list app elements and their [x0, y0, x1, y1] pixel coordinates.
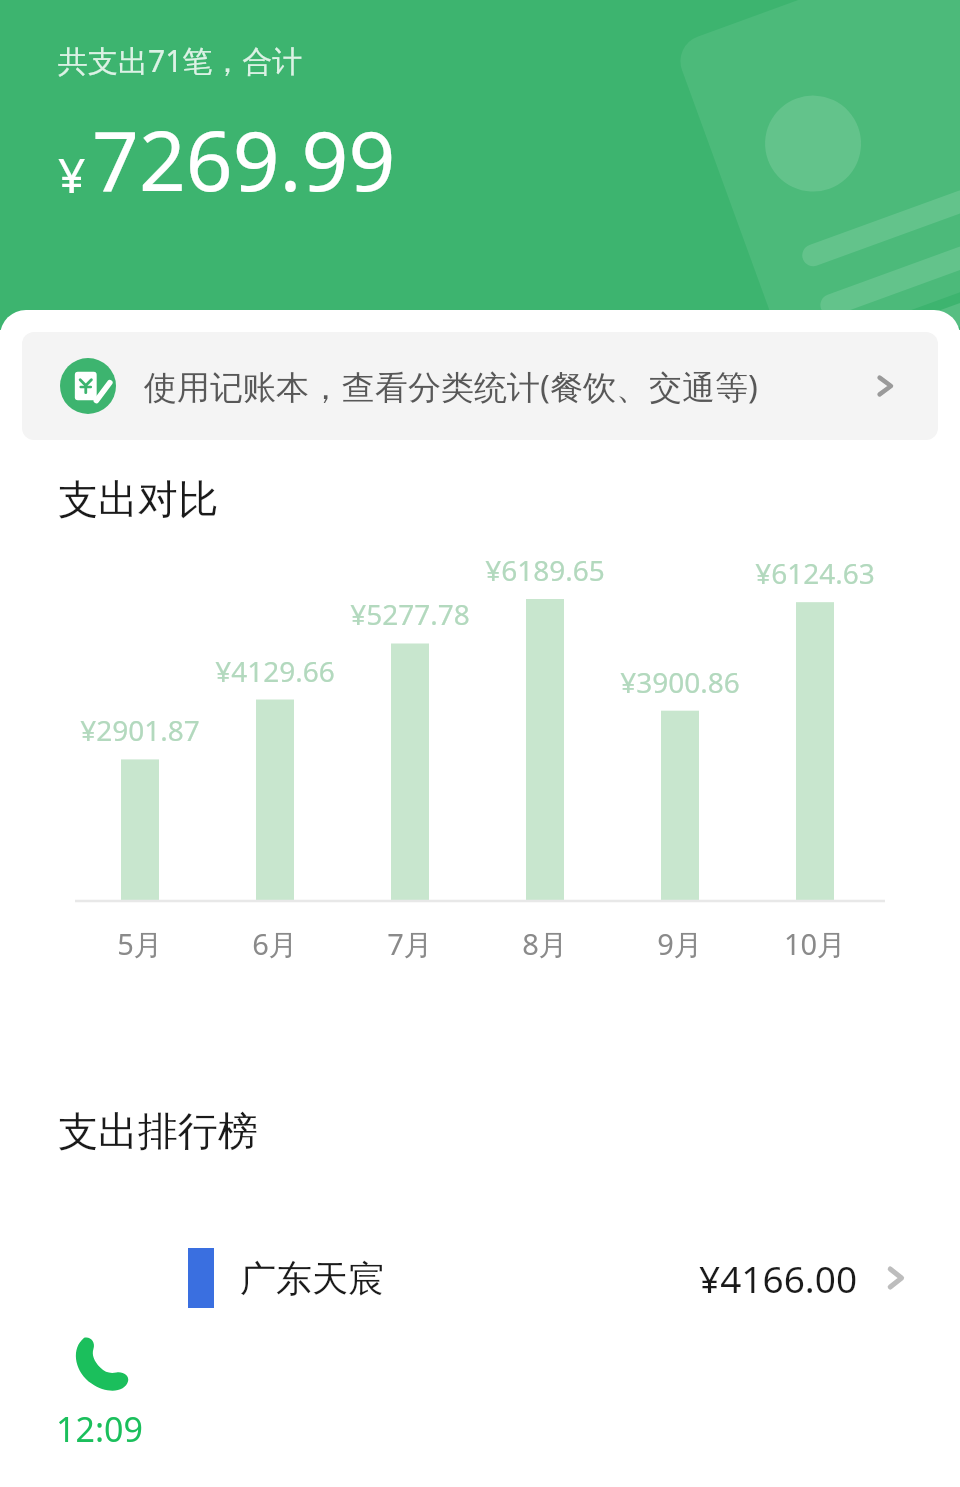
staticText: ¥5277.78: [315, 595, 505, 633]
button[interactable]: Return to call: [13, 1310, 185, 1478]
staticText: 7269.99: [92, 103, 396, 215]
button[interactable]: 广东天宸: [0, 1218, 960, 1338]
staticText: ¥4166.00: [699, 1253, 858, 1303]
staticText: 共支出71笔，合计: [58, 40, 303, 81]
staticText: ¥: [58, 142, 86, 207]
staticText: ¥6124.63: [720, 554, 910, 592]
staticText: ¥3900.86: [585, 663, 775, 701]
staticText: ¥2901.87: [45, 711, 235, 749]
button[interactable]: 使用记账本，查看分类统计(餐饮、交通等): [22, 332, 938, 440]
staticText: 广东天宸: [240, 1256, 384, 1301]
staticText: 使用记账本，查看分类统计(餐饮、交通等): [144, 364, 758, 409]
staticText: 支出对比: [58, 474, 218, 524]
staticText: 7月: [340, 924, 480, 964]
staticText: 10月: [745, 924, 885, 964]
staticText: 6月: [205, 924, 345, 964]
staticText: ¥4129.66: [180, 652, 370, 690]
staticText: 12:09: [56, 1406, 143, 1452]
staticText: 8月: [475, 924, 615, 964]
staticText: 5月: [70, 924, 210, 964]
staticText: ¥6189.65: [450, 551, 640, 589]
staticText: 支出排行榜: [58, 1106, 258, 1156]
staticText: 9月: [610, 924, 750, 964]
